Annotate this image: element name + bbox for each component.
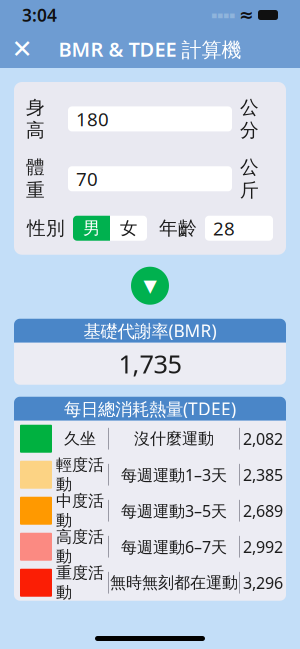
staticText: 公斤 <box>240 156 259 202</box>
staticText: 高度活動 <box>56 527 104 566</box>
staticText: 2,082 <box>243 428 283 449</box>
staticText: 體重 <box>26 156 45 202</box>
staticText: ▪▪▪▪ <box>211 10 235 20</box>
staticText: 70 <box>76 166 98 191</box>
staticText: 2,992 <box>243 536 283 557</box>
staticText: ≈ <box>239 5 254 25</box>
staticText: BMR & TDEE 計算機 <box>58 36 241 62</box>
staticText: 年齡 <box>159 217 197 240</box>
staticText: 3,296 <box>243 572 283 593</box>
staticText: 2,385 <box>243 464 283 485</box>
button[interactable]: 關閉 <box>0 30 44 68</box>
staticText: 每週運動6–7天 <box>121 536 227 557</box>
staticText: 公分 <box>240 96 259 142</box>
staticText: 重度活動 <box>56 563 104 602</box>
staticText: 沒什麼運動 <box>134 429 214 449</box>
staticText: ▼ <box>143 276 156 296</box>
button[interactable]: 女 <box>110 216 147 241</box>
staticText: 2,689 <box>243 500 283 521</box>
staticText: 中度活動 <box>56 491 104 530</box>
button[interactable]: 180 <box>68 106 232 131</box>
staticText: 身高 <box>26 96 45 142</box>
staticText: 久坐 <box>64 429 96 449</box>
staticText: 1,735 <box>118 347 181 380</box>
staticText: 3:04 <box>22 3 57 26</box>
staticText: 基礎代謝率(BMR) <box>83 319 216 342</box>
staticText: 輕度活動 <box>56 455 104 494</box>
staticText: 性別 <box>27 217 65 240</box>
staticText: ✕ <box>11 35 32 63</box>
button[interactable]: 計算 <box>131 267 169 305</box>
staticText: 每日總消耗熱量(TDEE) <box>64 397 236 420</box>
staticText: 男 <box>83 218 100 239</box>
staticText: 每週運動3–5天 <box>121 500 227 521</box>
staticText: 無時無刻都在運動 <box>110 573 238 593</box>
staticText: 女 <box>120 218 137 239</box>
button[interactable]: 28 <box>205 216 273 241</box>
button[interactable]: 70 <box>68 166 232 191</box>
staticText: 28 <box>213 216 235 241</box>
staticText: 每週運動1–3天 <box>121 464 227 485</box>
button[interactable]: 男 <box>73 216 110 241</box>
staticText: 180 <box>76 106 109 131</box>
